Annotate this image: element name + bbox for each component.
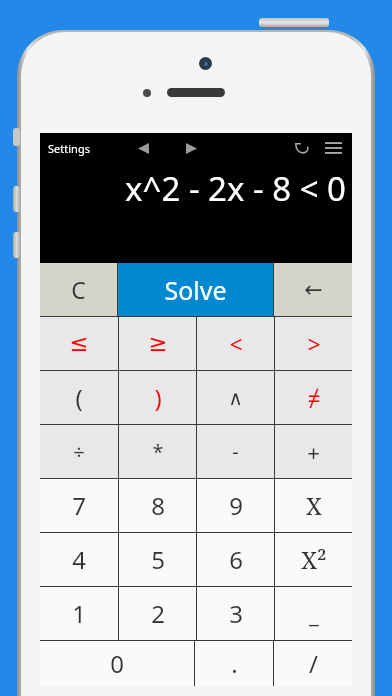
button[interactable]: . xyxy=(195,641,273,686)
staticText: . xyxy=(231,647,238,680)
button[interactable]: > xyxy=(275,317,352,370)
staticText: 5 xyxy=(151,543,165,576)
staticText: ( xyxy=(75,381,83,414)
button[interactable]: 9 xyxy=(197,479,274,532)
staticText: _ xyxy=(309,599,319,629)
button[interactable]: ∧ xyxy=(197,371,274,424)
staticText: ≠ xyxy=(307,382,321,413)
staticText: / xyxy=(309,647,318,680)
staticText: 4 xyxy=(72,543,86,576)
button[interactable]: 4 xyxy=(40,533,118,586)
button[interactable]: < xyxy=(197,317,274,370)
button[interactable]: ≥ xyxy=(119,317,196,370)
button[interactable]: 3 xyxy=(197,587,274,640)
button[interactable]: X² xyxy=(275,533,352,586)
button[interactable]: 2 xyxy=(119,587,196,640)
staticText: 9 xyxy=(229,489,243,522)
staticText: ) xyxy=(154,381,162,414)
button[interactable]: - xyxy=(197,425,274,478)
staticText: Solve xyxy=(164,273,227,307)
button[interactable]: Next xyxy=(178,135,204,161)
staticText: - xyxy=(232,438,239,465)
button[interactable]: / xyxy=(274,641,352,686)
button[interactable]: 1 xyxy=(40,587,118,640)
button[interactable]: _ xyxy=(275,587,352,640)
button[interactable]: Solve xyxy=(118,263,273,316)
button[interactable]: Settings xyxy=(46,137,92,160)
button[interactable]: X xyxy=(275,479,352,532)
staticText: 1 xyxy=(72,597,86,630)
button[interactable]: 8 xyxy=(119,479,196,532)
button[interactable]: C xyxy=(40,263,117,316)
button[interactable]: ≠ xyxy=(275,371,352,424)
button[interactable]: * xyxy=(119,425,196,478)
button[interactable]: 7 xyxy=(40,479,118,532)
button[interactable]: 0 xyxy=(40,641,194,686)
staticText: + xyxy=(307,437,320,467)
button[interactable]: 5 xyxy=(119,533,196,586)
staticText: x^2 - 2x - 8 < 0 xyxy=(125,166,346,211)
button[interactable]: Undo xyxy=(288,135,314,161)
staticText: Settings xyxy=(48,141,90,156)
button[interactable]: ( xyxy=(40,371,118,424)
staticText: 2 xyxy=(151,597,165,630)
button[interactable]: Previous xyxy=(130,135,156,161)
button[interactable]: Backspace xyxy=(274,263,352,316)
staticText: 7 xyxy=(72,489,86,522)
staticText: 3 xyxy=(229,597,243,630)
staticText: 0 xyxy=(110,647,124,680)
staticText: ÷ xyxy=(73,438,85,465)
staticText: C xyxy=(71,274,86,305)
staticText: > xyxy=(307,328,321,359)
staticText: < xyxy=(229,328,243,359)
button[interactable]: + xyxy=(275,425,352,478)
button[interactable]: Menu xyxy=(320,135,346,161)
staticText: 8 xyxy=(151,489,165,522)
staticText: * xyxy=(152,438,164,465)
button[interactable]: 6 xyxy=(197,533,274,586)
staticText: ← xyxy=(304,277,323,303)
button[interactable]: ÷ xyxy=(40,425,118,478)
staticText: X xyxy=(306,489,322,522)
staticText: ≥ xyxy=(148,330,168,357)
staticText: ≤ xyxy=(69,330,89,357)
staticText: ∧ xyxy=(228,386,243,409)
staticText: X² xyxy=(301,543,327,576)
staticText: 6 xyxy=(229,543,243,576)
button[interactable]: ) xyxy=(119,371,196,424)
button[interactable]: ≤ xyxy=(40,317,118,370)
